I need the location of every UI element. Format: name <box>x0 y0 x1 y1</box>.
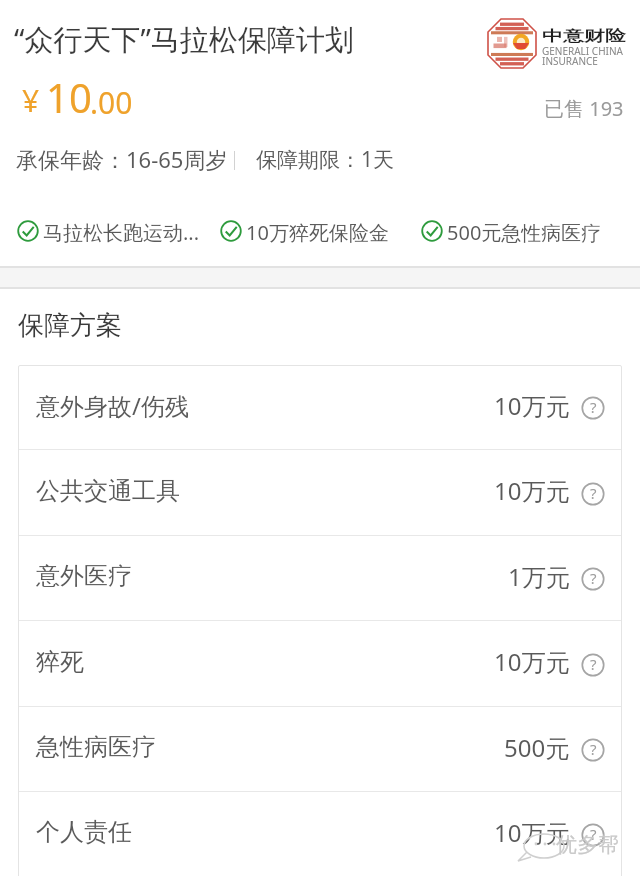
staticText: ? <box>590 483 597 503</box>
button[interactable]: 急性病医疗 <box>18 707 622 791</box>
staticText: 承保年龄：16-65周岁 <box>16 144 228 174</box>
staticText: 保障期限：1天 <box>256 145 395 174</box>
staticText: 500元急性病医疗 <box>447 219 602 246</box>
staticText: ? <box>590 824 597 844</box>
staticText: ¥ <box>22 80 40 121</box>
staticText: GENERALI CHINA <box>542 44 623 58</box>
button[interactable]: Info <box>581 738 605 762</box>
staticText: ? <box>590 654 597 674</box>
staticText: INSURANCE <box>542 54 598 68</box>
staticText: 马拉松长跑运动... <box>43 219 200 246</box>
button[interactable]: 猝死 <box>18 621 622 706</box>
button[interactable]: Info <box>581 482 605 506</box>
staticText: 500元 <box>504 731 570 764</box>
button[interactable]: 意外医疗 <box>18 536 622 620</box>
staticText: 猝死 <box>36 647 84 677</box>
button[interactable]: Info <box>581 653 605 677</box>
staticText: .00 <box>90 82 133 123</box>
staticText: 中意财险 <box>542 27 626 45</box>
staticText: 保障方案 <box>18 309 122 342</box>
staticText: 1万元 <box>508 560 570 593</box>
staticText: 意外医疗 <box>36 561 132 591</box>
staticText: 已售 193 <box>544 95 624 122</box>
staticText: 10万猝死保险金 <box>246 219 389 246</box>
staticText: ? <box>590 739 597 759</box>
staticText: ? <box>590 568 597 588</box>
staticText: ? <box>590 397 597 417</box>
staticText: 优多帮 <box>556 832 619 858</box>
staticText: 急性病医疗 <box>36 732 156 762</box>
staticText: 10万元 <box>494 389 570 422</box>
staticText: 10万元 <box>494 645 570 678</box>
button[interactable]: 意外身故/伤残 <box>18 365 622 449</box>
staticText: 10万元 <box>494 816 570 849</box>
button[interactable]: 个人责任 <box>18 792 622 876</box>
staticText: 10万元 <box>494 474 570 507</box>
button[interactable]: Info <box>581 567 605 591</box>
staticText: “众行天下”马拉松保障计划 <box>14 19 354 59</box>
button[interactable]: 公共交通工具 <box>18 450 622 535</box>
staticText: 个人责任 <box>36 817 132 847</box>
staticText: 公共交通工具 <box>36 476 180 506</box>
button[interactable]: Info <box>581 823 605 847</box>
staticText: 意外身故/伤残 <box>36 389 189 422</box>
button[interactable]: Info <box>581 396 605 420</box>
staticText: 10 <box>46 70 92 124</box>
